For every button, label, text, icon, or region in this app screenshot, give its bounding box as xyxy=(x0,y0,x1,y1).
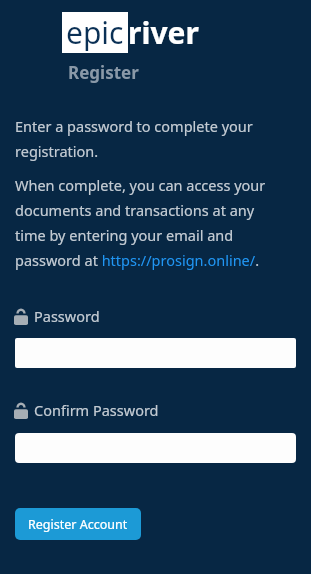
staticText: Register xyxy=(68,61,139,84)
staticText: river xyxy=(128,12,199,53)
staticText: Register Account xyxy=(28,516,128,533)
button[interactable]: Text input xyxy=(15,338,296,368)
button[interactable]: Text input xyxy=(15,433,296,463)
staticText: epic xyxy=(66,12,124,53)
staticText: When complete, you can access your docum… xyxy=(15,175,283,270)
staticText: Confirm Password xyxy=(34,400,159,420)
button[interactable]: Register Account xyxy=(15,508,141,540)
other: Lock xyxy=(14,402,28,419)
other: Lock xyxy=(14,308,28,325)
staticText: Password xyxy=(34,306,100,326)
staticText: Enter a password to complete your regist… xyxy=(15,116,277,161)
